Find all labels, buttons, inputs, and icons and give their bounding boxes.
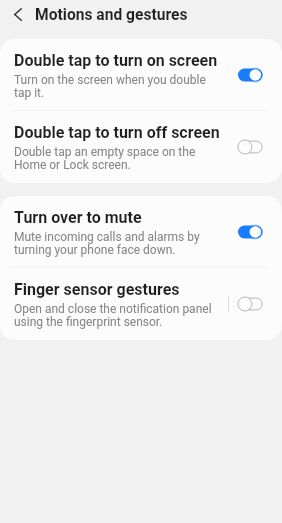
button[interactable]: Double tap to turn off screen <box>0 111 282 183</box>
staticText: Finger sensor gestures <box>14 280 180 299</box>
button[interactable]: On <box>238 63 263 87</box>
button[interactable]: Double tap to turn on screen <box>0 39 282 111</box>
staticText: Open and close the notification panel us… <box>14 303 220 329</box>
staticText: Mute incoming calls and alarms by turnin… <box>14 231 220 257</box>
staticText: Turn over to mute <box>14 208 142 227</box>
staticText: Double tap to turn off screen <box>14 123 220 142</box>
button[interactable]: Turn over to mute <box>0 196 282 268</box>
button[interactable]: Navigate up <box>4 0 32 28</box>
button[interactable]: Finger sensor gestures <box>0 268 282 340</box>
button[interactable]: Off <box>238 292 263 316</box>
staticText: Motions and gestures <box>35 6 188 24</box>
staticText: Turn on the screen when you double tap i… <box>14 74 220 100</box>
staticText: Double tap an empty space on the Home or… <box>14 146 220 172</box>
button[interactable]: Off <box>238 135 263 159</box>
staticText: Double tap to turn on screen <box>14 51 218 70</box>
button[interactable]: On <box>238 220 263 244</box>
